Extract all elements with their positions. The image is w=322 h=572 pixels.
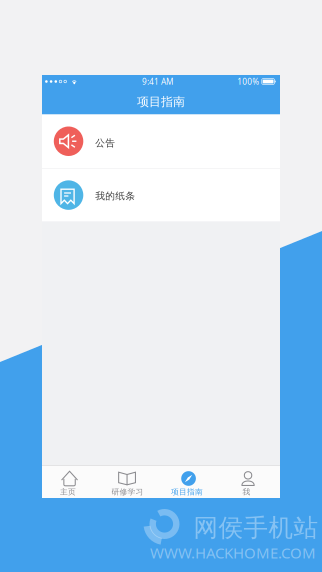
button[interactable]: 公告 [42,114,280,168]
button[interactable]: 主页 [40,465,99,498]
staticText: 我的纸条 [95,190,135,202]
staticText: 项目指南 [171,487,203,497]
staticText: 研修学习 [111,487,143,497]
staticText: 100% [237,76,259,87]
staticText: WWW.HACKHOME.COM [150,542,316,563]
button[interactable]: 项目指南 [159,465,218,498]
button[interactable]: 我 [218,465,278,498]
staticText: 项目指南 [137,94,185,109]
staticText: 9:41 AM [142,76,173,87]
button[interactable]: 研修学习 [99,465,159,498]
staticText: 网侯手机站 [193,512,318,543]
staticText: 公告 [95,137,115,149]
button[interactable]: 我的纸条 [42,169,280,222]
staticText: 我 [242,487,250,497]
staticText: 主页 [60,487,76,497]
